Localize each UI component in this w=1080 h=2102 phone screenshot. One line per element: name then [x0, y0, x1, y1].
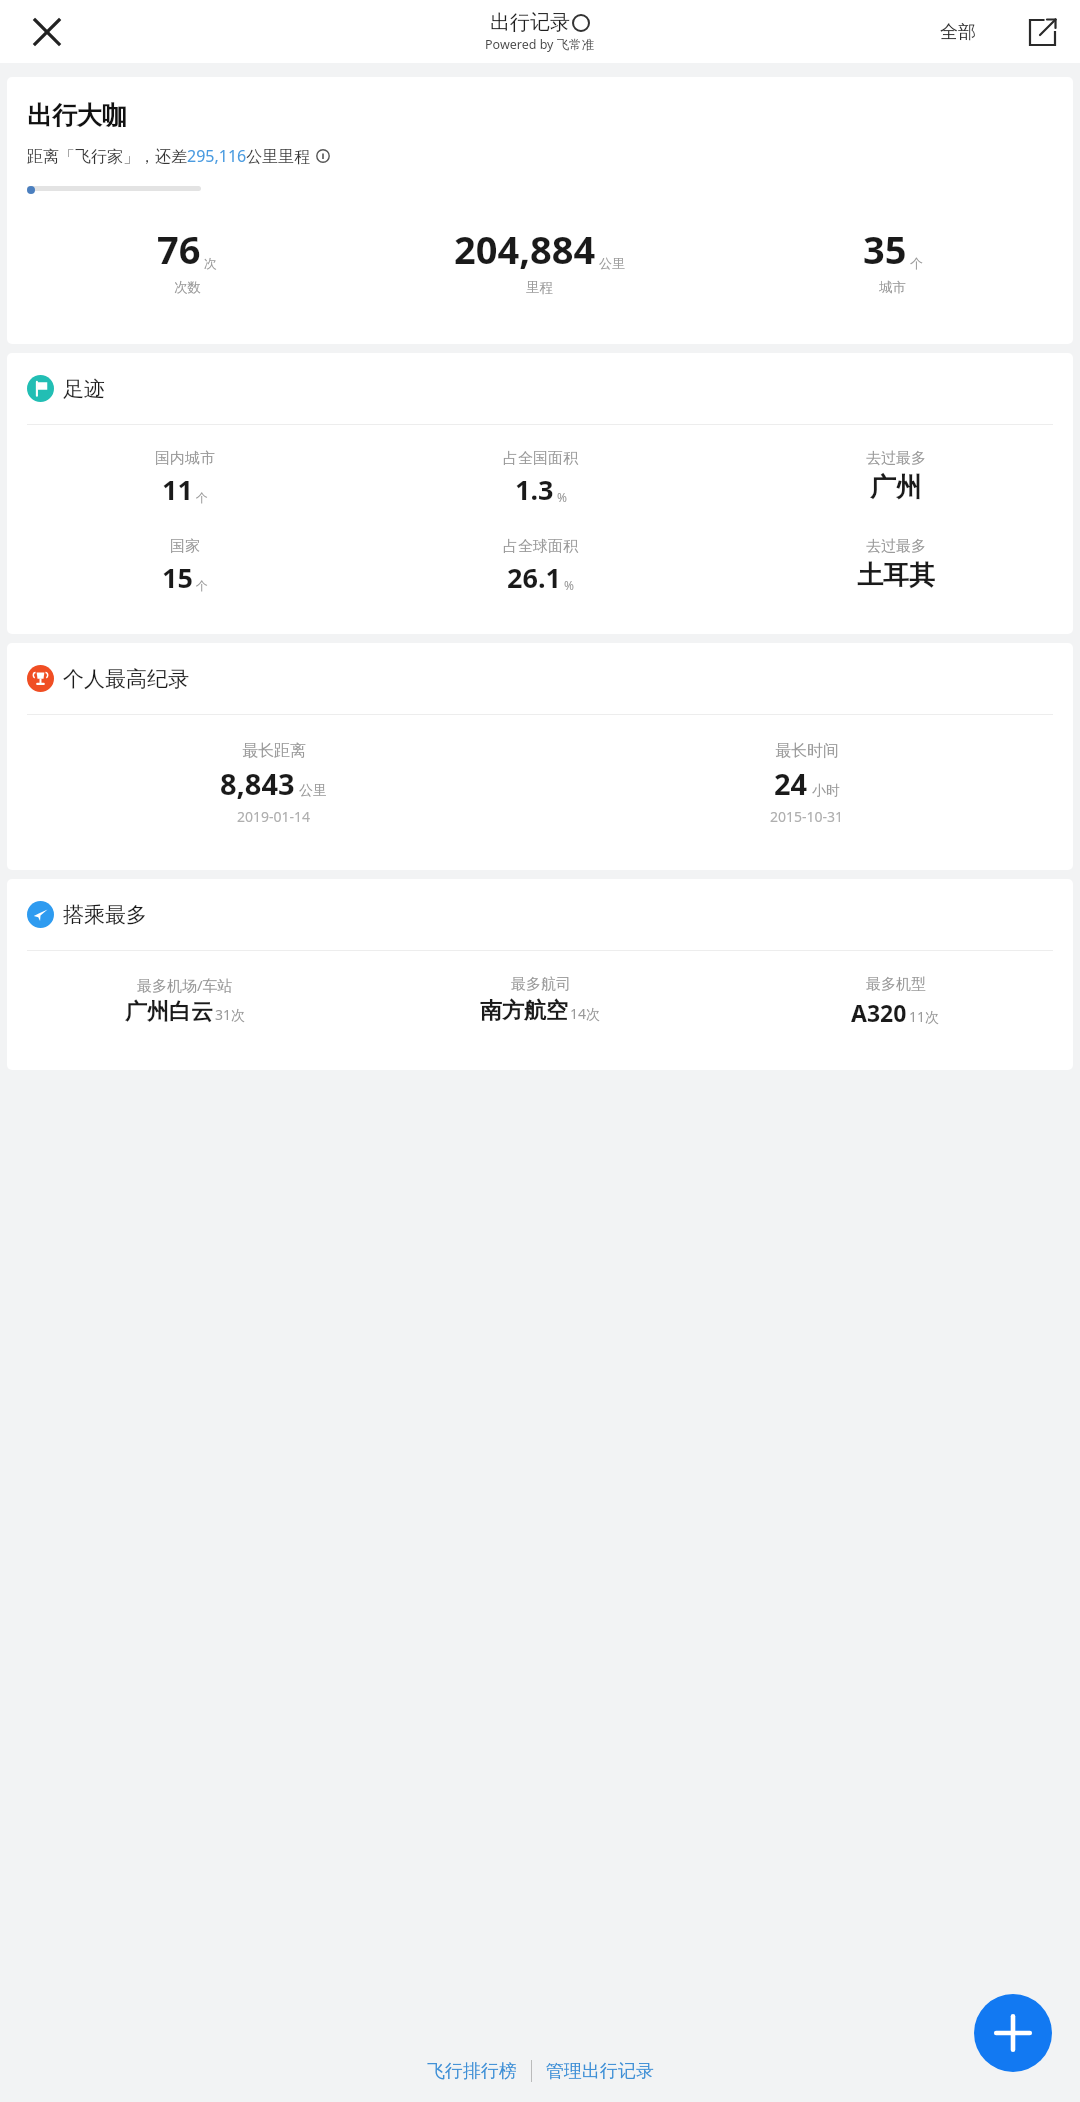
staticText: 去过最多: [866, 449, 926, 468]
staticText: 204,884: [454, 223, 596, 275]
staticText: 小时: [812, 782, 840, 800]
button[interactable]: Close: [20, 5, 74, 59]
button[interactable]: 足迹: [7, 353, 1073, 634]
staticText: 31次: [215, 1005, 246, 1024]
staticText: 次: [204, 255, 217, 271]
staticText: %: [557, 489, 567, 505]
button[interactable]: 搭乘最多: [7, 879, 1073, 1070]
staticText: 南方航空: [480, 997, 568, 1025]
staticText: 24: [774, 764, 808, 803]
button[interactable]: 个人最高纪录: [7, 643, 1073, 870]
staticText: 占全球面积: [503, 537, 578, 556]
staticText: 去过最多: [866, 537, 926, 556]
staticText: 国家: [170, 537, 200, 556]
staticText: 最长时间: [775, 741, 839, 761]
staticText: 最长距离: [242, 741, 306, 761]
staticText: 个人最高纪录: [63, 666, 189, 692]
staticText: 11次: [909, 1007, 940, 1026]
staticText: 广州白云: [125, 998, 213, 1026]
staticText: 2019-01-14: [237, 807, 311, 826]
staticText: 14次: [570, 1004, 601, 1023]
staticText: 2015-10-31: [770, 807, 844, 826]
staticText: 足迹: [63, 376, 105, 402]
staticText: 搭乘最多: [63, 902, 147, 928]
staticText: A320: [851, 997, 907, 1028]
button[interactable]: 出行记录: [485, 10, 595, 53]
button[interactable]: 出行大咖: [7, 77, 1073, 344]
staticText: 占全国面积: [503, 449, 578, 468]
staticText: Powered by 飞常准: [485, 36, 595, 53]
button[interactable]: 管理出行记录: [532, 2048, 668, 2095]
staticText: %: [564, 577, 574, 593]
button[interactable]: Add trip record: [974, 1994, 1052, 2072]
staticText: 城市: [879, 279, 906, 296]
staticText: 出行记录: [490, 10, 570, 35]
staticText: 76: [157, 223, 201, 275]
staticText: 35: [863, 223, 907, 275]
staticText: 距离「飞行家」，还差295,116公里里程: [27, 145, 311, 167]
staticText: 11: [162, 471, 193, 508]
staticText: 飞行排行榜: [427, 2060, 517, 2083]
staticText: 广州: [870, 471, 922, 504]
staticText: 次数: [174, 279, 201, 296]
button[interactable]: 全部: [930, 11, 986, 54]
staticText: 国内城市: [155, 449, 215, 468]
staticText: 26.1: [507, 559, 561, 596]
staticText: 最多机型: [866, 975, 926, 994]
staticText: 全部: [940, 21, 976, 44]
button[interactable]: 飞行排行榜: [413, 2048, 531, 2095]
staticText: 里程: [526, 279, 553, 296]
staticText: 个: [196, 490, 208, 505]
staticText: 15: [162, 559, 193, 596]
staticText: 最多机场/车站: [137, 975, 233, 995]
staticText: 1.3: [515, 471, 554, 508]
staticText: 最多航司: [511, 975, 571, 994]
staticText: 公里: [299, 782, 327, 800]
staticText: 出行大咖: [27, 100, 127, 131]
staticText: 土耳其: [857, 559, 935, 592]
staticText: 管理出行记录: [546, 2060, 654, 2083]
button[interactable]: Share: [1018, 8, 1066, 56]
staticText: 个: [910, 255, 923, 271]
staticText: 个: [196, 578, 208, 593]
staticText: 公里: [599, 255, 625, 271]
staticText: 8,843: [220, 764, 295, 803]
